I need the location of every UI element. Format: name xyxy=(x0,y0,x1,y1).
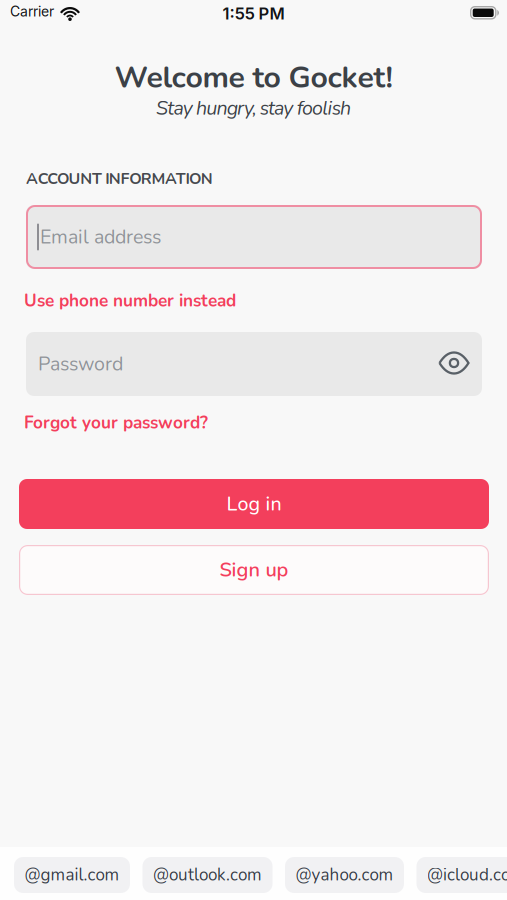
staticText: Carrier xyxy=(10,3,54,20)
button[interactable]: @outlook.com xyxy=(142,857,272,893)
staticText: Sign up xyxy=(219,556,288,584)
staticText: @outlook.com xyxy=(153,863,262,887)
button[interactable]: Email address xyxy=(26,205,482,269)
button[interactable]: Password xyxy=(26,332,482,396)
staticText: @yahoo.com xyxy=(295,863,393,887)
button[interactable]: Log in xyxy=(19,479,489,529)
staticText: @gmail.com xyxy=(24,863,119,887)
button[interactable]: @icloud.com xyxy=(416,857,507,893)
button[interactable]: Use phone number instead xyxy=(24,289,236,312)
button[interactable]: @yahoo.com xyxy=(285,857,404,893)
staticText: Log in xyxy=(226,491,281,517)
staticText: Forgot your password? xyxy=(24,411,208,434)
button[interactable] xyxy=(434,343,474,383)
staticText: Password xyxy=(38,351,123,377)
button[interactable]: Forgot your password? xyxy=(24,411,208,434)
staticText: 1:55 PM xyxy=(222,3,284,24)
button[interactable]: @gmail.com xyxy=(14,857,130,893)
button[interactable]: Sign up xyxy=(19,545,489,595)
staticText: @icloud.com xyxy=(427,863,507,887)
staticText: Stay hungry, stay foolish xyxy=(156,95,351,122)
staticText: Welcome to Gocket! xyxy=(114,57,392,98)
staticText: Use phone number instead xyxy=(24,289,236,312)
staticText: Email address xyxy=(40,224,161,250)
staticText: ACCOUNT INFORMATION xyxy=(26,168,213,190)
